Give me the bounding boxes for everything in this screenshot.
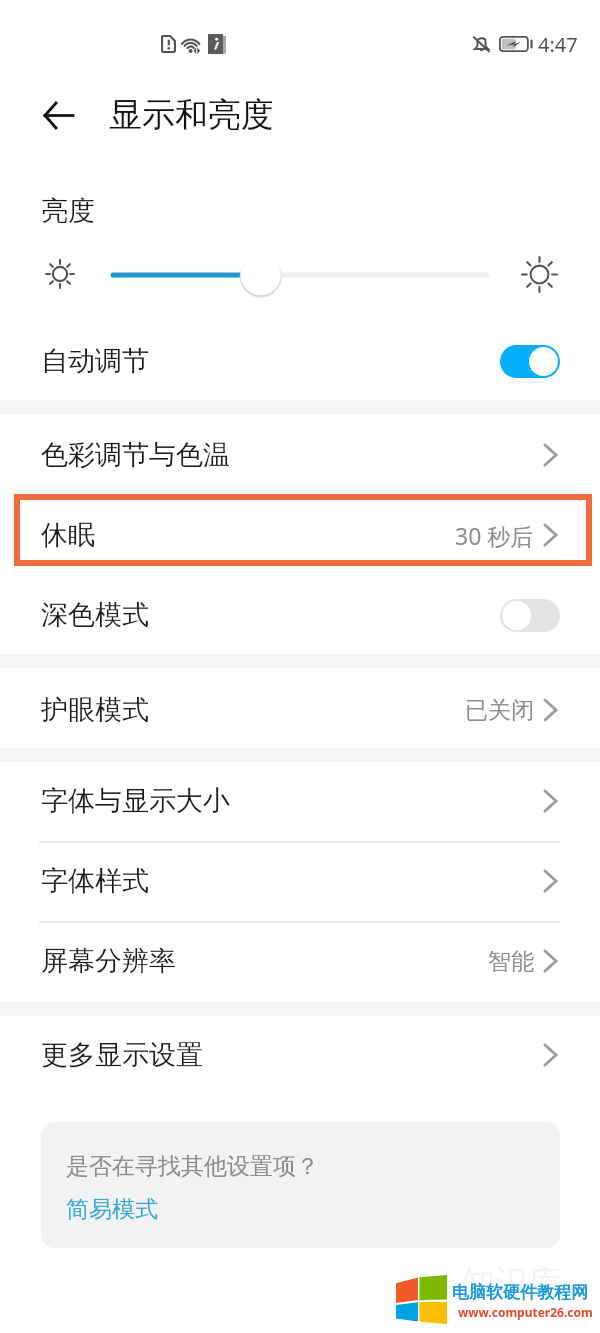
staticText: 字体样式 (41, 864, 149, 898)
button[interactable]: 字体样式 (0, 841, 600, 921)
button[interactable]: 自动调节 (0, 326, 600, 396)
staticText: 屏幕分辨率 (41, 944, 176, 978)
staticText: 休眠 (41, 518, 95, 552)
staticText: 色彩调节与色温 (41, 438, 230, 472)
button[interactable]: 休眠 (0, 495, 600, 575)
staticText: 知识库 (462, 1262, 561, 1304)
button[interactable]: 色彩调节与色温 (0, 415, 600, 495)
button[interactable]: 屏幕分辨率 (0, 921, 600, 1001)
button[interactable]: Back (35, 91, 83, 139)
button[interactable]: 字体与显示大小 (0, 761, 600, 841)
button[interactable]: On (500, 345, 560, 378)
staticText: 4:47 (538, 31, 578, 55)
staticText: 字体与显示大小 (41, 784, 230, 818)
button[interactable]: 更多显示设置 (0, 1015, 600, 1095)
staticText: 更多显示设置 (41, 1038, 203, 1072)
staticText: 是否在寻找其他设置项？ (66, 1152, 319, 1181)
staticText: 亮度 (41, 194, 95, 228)
button[interactable]: 深色模式 (0, 575, 600, 655)
staticText: 深色模式 (41, 598, 149, 632)
staticText: www.computer26.com (458, 1304, 593, 1320)
staticText: 护眼模式 (41, 693, 149, 727)
button[interactable]: 简易模式 (66, 1195, 158, 1224)
button[interactable]: Off (500, 599, 560, 632)
staticText: 电脑软硬件教程网 (452, 1282, 588, 1303)
staticText: 自动调节 (41, 344, 149, 378)
staticText: 显示和亮度 (109, 94, 274, 136)
staticText: 30 秒后 (455, 520, 534, 551)
button[interactable]: 护眼模式 (0, 670, 600, 750)
staticText: 智能 (488, 947, 534, 976)
staticText: 已关闭 (465, 696, 534, 725)
